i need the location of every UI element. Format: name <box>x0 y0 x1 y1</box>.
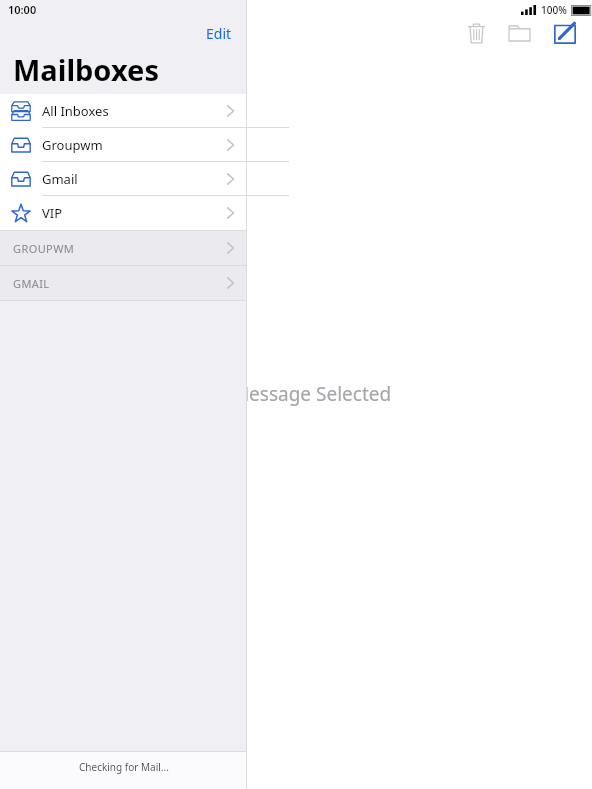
button[interactable]: Gmail <box>0 162 247 196</box>
button[interactable]: Groupwm <box>0 128 247 162</box>
staticText: Edit <box>206 24 232 43</box>
button[interactable]: GROUPWM <box>0 231 247 265</box>
button[interactable]: All Inboxes <box>0 94 247 128</box>
button[interactable]: Compose <box>542 16 587 50</box>
button[interactable]: VIP <box>0 196 247 230</box>
staticText: VIP <box>42 204 63 222</box>
staticText: GMAIL <box>13 276 50 291</box>
button[interactable]: GMAIL <box>0 266 247 300</box>
staticText: Groupwm <box>42 136 103 154</box>
button[interactable]: Delete <box>455 16 497 50</box>
staticText: Mailboxes <box>13 50 159 89</box>
staticText: 100% <box>541 3 567 17</box>
button[interactable]: Move to folder <box>497 16 542 50</box>
staticText: No Message Selected <box>201 381 392 407</box>
staticText: Checking for Mail... <box>79 760 169 774</box>
staticText: GROUPWM <box>13 241 75 256</box>
staticText: Gmail <box>42 170 78 188</box>
staticText: 10:00 <box>8 2 37 17</box>
button[interactable]: Edit <box>201 20 237 47</box>
staticText: All Inboxes <box>42 102 109 120</box>
